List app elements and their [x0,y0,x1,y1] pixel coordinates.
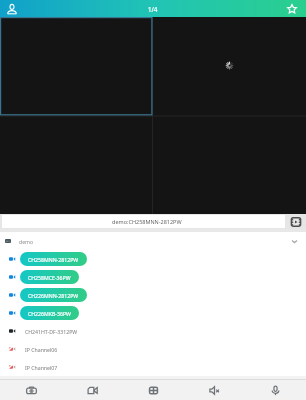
button[interactable]: Favorite [286,3,297,14]
staticText: CH226MKB-36PW [28,310,71,317]
button[interactable]: Record [62,380,123,400]
button[interactable]: Talk [245,380,306,400]
button[interactable]: IP Channel07 [0,358,306,376]
button[interactable]: CH226MKB-36PW [0,304,306,322]
staticText: demo:CH258MNN-2812PW [112,218,182,225]
button[interactable]: Mute [184,380,245,400]
button[interactable]: CH258MNN-2812PW [0,250,306,268]
staticText: IP Channel07 [25,364,58,371]
button[interactable] [2,215,285,228]
staticText: demo [19,238,34,245]
button[interactable]: CH241HT-DF-3312PW [0,322,306,340]
staticText: IP Channel06 [25,346,58,353]
button[interactable]: Snapshot [0,380,62,400]
button[interactable]: Playback [291,217,301,227]
staticText: CH241HT-DF-3312PW [25,328,78,335]
button[interactable]: Account [7,4,17,14]
staticText: CH258MCE-36PW [28,274,71,281]
button[interactable]: CH258MCE-36PW [0,268,306,286]
staticText: CH258MNN-2812PW [28,256,79,263]
staticText: CH226MNN-2812PW [28,292,79,299]
button[interactable]: CH226MNN-2812PW [0,286,306,304]
button[interactable]: IP Channel06 [0,340,306,358]
button[interactable]: demo [0,232,306,250]
button[interactable]: Layout [123,380,184,400]
staticText: 1/4 [148,5,158,13]
